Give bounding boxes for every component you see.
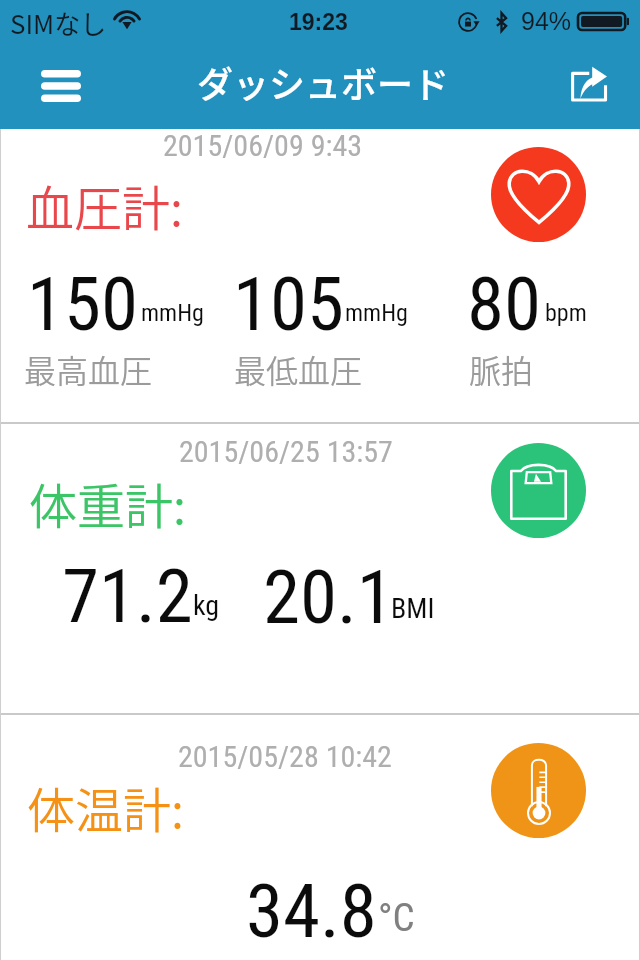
staticText: 34.8 <box>246 867 377 955</box>
staticText: 体重計: <box>29 468 186 538</box>
staticText: 150 <box>27 260 139 348</box>
staticText: 94% <box>521 7 572 35</box>
staticText: kg <box>193 589 220 622</box>
staticText: bpm <box>545 299 587 327</box>
staticText: 2015/06/09 9:43 <box>163 128 363 163</box>
staticText: mmHg <box>141 299 204 327</box>
staticText: 脈拍 <box>469 346 534 392</box>
staticText: °C <box>378 895 415 941</box>
button[interactable] <box>0 129 640 422</box>
staticText: 血圧計: <box>26 170 183 240</box>
staticText: 最低血圧 <box>234 346 363 392</box>
staticText: 80 <box>467 260 542 348</box>
staticText: 105 <box>233 260 345 348</box>
staticText: 体温計: <box>27 772 184 842</box>
button[interactable]: Menu <box>22 54 100 118</box>
staticText: 71.2 <box>62 552 193 640</box>
button[interactable] <box>0 424 640 713</box>
staticText: mmHg <box>345 299 408 327</box>
button[interactable]: Share <box>556 51 620 115</box>
staticText: ダッシュボード <box>197 56 450 108</box>
staticText: SIMなし <box>10 4 107 42</box>
staticText: BMI <box>391 592 435 625</box>
staticText: 最高血圧 <box>24 346 153 392</box>
staticText: 20.1 <box>263 553 394 641</box>
staticText: 19:23 <box>289 9 348 35</box>
staticText: 2015/06/25 13:57 <box>179 434 393 469</box>
staticText: 2015/05/28 10:42 <box>178 739 392 774</box>
button[interactable] <box>0 715 640 960</box>
